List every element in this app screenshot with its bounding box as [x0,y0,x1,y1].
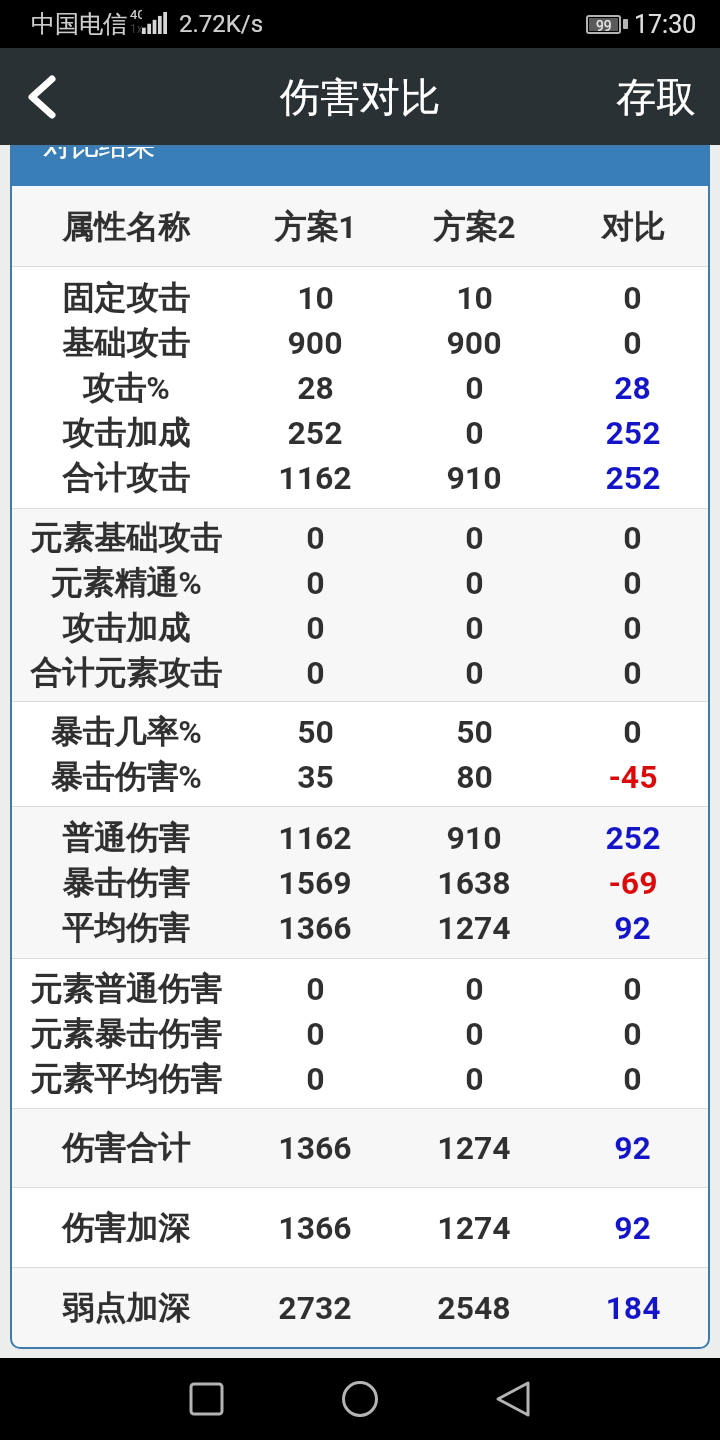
button[interactable]: 元素基础攻击 [12,515,708,560]
button[interactable]: 存取 [596,48,720,145]
staticText: 910 [446,819,502,857]
staticText: 攻击加成 [62,413,190,453]
staticText: 92 [614,1209,651,1247]
staticText: 0 [623,1060,642,1098]
staticText: 1366 [278,1129,352,1167]
staticText: 0 [465,1060,484,1098]
staticText: 0 [623,564,642,602]
button[interactable]: 元素精通% [12,560,708,605]
staticText: 1366 [278,1209,352,1247]
staticText: 暴击伤害% [50,757,202,797]
staticText: 属性名称 [62,207,190,247]
staticText: 元素平均伤害 [30,1059,222,1099]
staticText: 0 [623,1015,642,1053]
staticText: 35 [297,758,334,796]
staticText: 方案1 [274,207,357,247]
staticText: 910 [446,459,502,497]
staticText: 2732 [278,1289,352,1327]
staticText: 50 [297,713,334,751]
button[interactable]: Back [0,48,84,145]
button[interactable]: Home [320,1359,400,1439]
staticText: 10 [456,279,493,317]
staticText: 0 [623,279,642,317]
staticText: 1x [130,22,142,36]
button[interactable]: 伤害合计 [12,1125,708,1170]
button[interactable]: 平均伤害 [12,905,708,950]
button[interactable]: 合计攻击 [12,455,708,500]
staticText: 252 [605,414,661,452]
staticText: 0 [465,564,484,602]
staticText: -45 [608,758,658,796]
staticText: 元素基础攻击 [30,518,222,558]
staticText: 28 [614,369,651,407]
staticText: 0 [306,1060,325,1098]
staticText: 2.72K/s [179,10,264,38]
button[interactable]: 元素普通伤害 [12,966,708,1011]
button[interactable]: 暴击几率% [12,709,708,754]
staticText: 0 [306,564,325,602]
staticText: 平均伤害 [62,908,190,948]
staticText: 184 [605,1289,661,1327]
staticText: 1366 [278,909,352,947]
staticText: 元素暴击伤害 [30,1014,222,1054]
staticText: 0 [465,369,484,407]
staticText: 0 [623,654,642,692]
staticText: 0 [465,654,484,692]
staticText: 900 [446,324,502,362]
staticText: 伤害对比 [280,72,440,122]
staticText: 1569 [278,864,352,902]
staticText: 1638 [437,864,511,902]
button[interactable]: 元素暴击伤害 [12,1011,708,1056]
button[interactable]: 固定攻击 [12,275,708,320]
staticText: 对比结果 [43,145,155,163]
staticText: 252 [605,459,661,497]
staticText: 对比 [601,207,665,247]
staticText: 0 [306,519,325,557]
staticText: 1162 [278,819,352,857]
staticText: 固定攻击 [62,278,190,318]
staticText: 基础攻击 [62,323,190,363]
staticText: 1162 [278,459,352,497]
staticText: 252 [605,819,661,857]
staticText: 0 [623,324,642,362]
button[interactable]: Recent apps [166,1359,246,1439]
button[interactable]: Back [473,1359,553,1439]
button[interactable]: 攻击% [12,365,708,410]
button[interactable]: 攻击加成 [12,605,708,650]
staticText: 0 [465,519,484,557]
staticText: 合计攻击 [62,458,190,498]
staticText: 伤害合计 [62,1128,190,1168]
button[interactable]: 元素平均伤害 [12,1056,708,1101]
staticText: 1274 [437,909,511,947]
staticText: 普通伤害 [62,818,190,858]
staticText: 0 [306,654,325,692]
staticText: -69 [608,864,658,902]
staticText: 10 [297,279,334,317]
button[interactable]: 基础攻击 [12,320,708,365]
staticText: 0 [306,970,325,1008]
button[interactable]: 攻击加成 [12,410,708,455]
staticText: 0 [306,1015,325,1053]
staticText: 伤害加深 [62,1208,190,1248]
staticText: 中国电信 [31,9,127,39]
staticText: 92 [614,1129,651,1167]
staticText: 17:30 [634,10,697,39]
staticText: 50 [456,713,493,751]
staticText: 900 [287,324,343,362]
staticText: 1274 [437,1129,511,1167]
button[interactable]: 暴击伤害 [12,860,708,905]
button[interactable]: 伤害加深 [12,1205,708,1250]
button[interactable]: 暴击伤害% [12,754,708,799]
button[interactable]: 普通伤害 [12,815,708,860]
button[interactable]: 合计元素攻击 [12,650,708,695]
staticText: 92 [614,909,651,947]
staticText: 暴击几率% [50,712,202,752]
staticText: 元素普通伤害 [30,969,222,1009]
staticText: 1274 [437,1209,511,1247]
button[interactable]: 弱点加深 [12,1285,708,1330]
staticText: 0 [465,414,484,452]
staticText: 攻击加成 [62,608,190,648]
staticText: 弱点加深 [62,1288,190,1328]
staticText: 0 [623,713,642,751]
staticText: 方案2 [433,207,516,247]
